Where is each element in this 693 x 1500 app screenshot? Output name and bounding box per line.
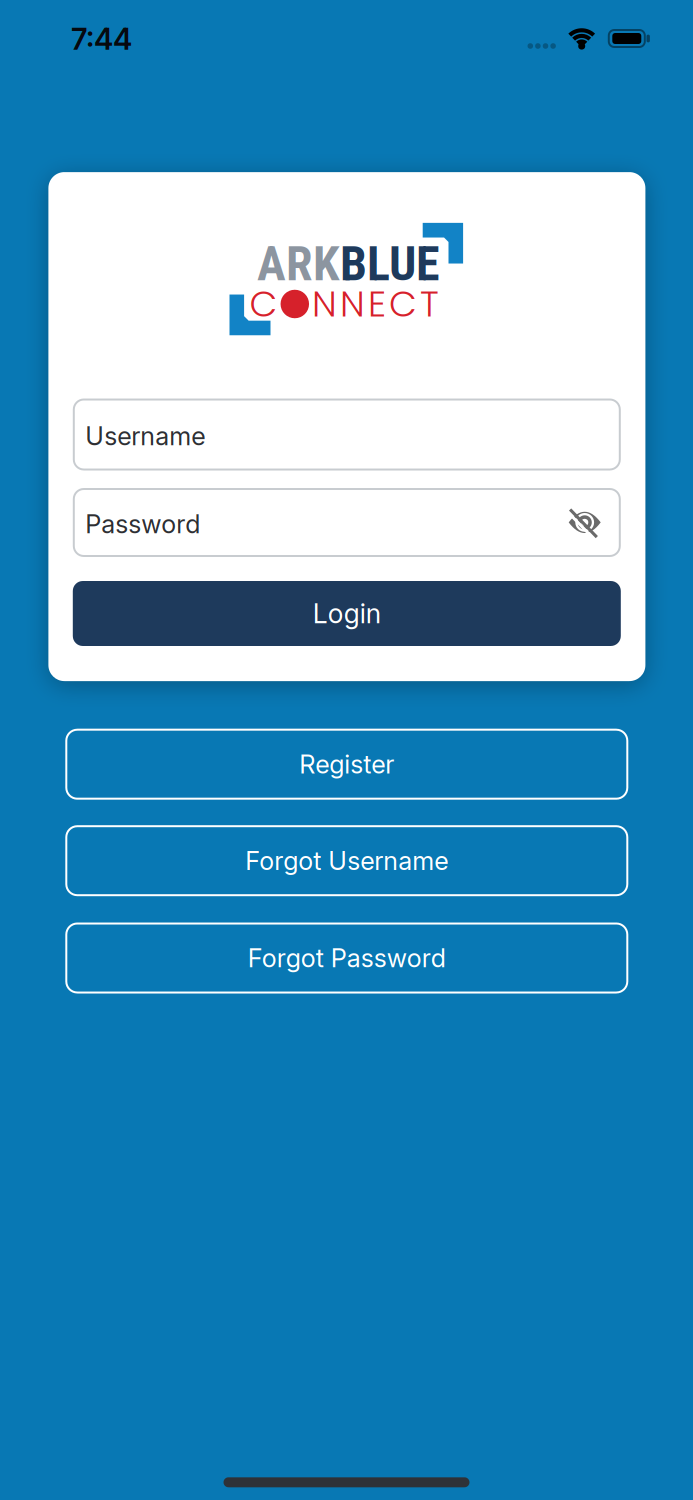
staticText: Username (85, 421, 205, 451)
staticText: Password (85, 509, 200, 539)
button[interactable]: Forgot Password (66, 923, 627, 992)
button[interactable]: Login (73, 581, 621, 646)
staticText: Forgot Password (248, 943, 446, 973)
button[interactable]: Forgot Username (66, 826, 627, 895)
staticText: C (250, 279, 278, 329)
staticText: N (312, 279, 337, 329)
staticText: E (368, 279, 386, 329)
button[interactable]: Show password (567, 504, 603, 540)
staticText: C (389, 279, 417, 329)
staticText: Login (313, 598, 381, 629)
staticText: N (340, 279, 365, 329)
staticText: Register (299, 749, 394, 779)
button[interactable]: Register (66, 730, 627, 799)
staticText: ARK (257, 236, 340, 292)
staticText: BLUE (340, 236, 440, 292)
staticText: Forgot Username (245, 846, 448, 876)
staticText: 7:44 (71, 22, 132, 56)
staticText: T (420, 279, 439, 329)
